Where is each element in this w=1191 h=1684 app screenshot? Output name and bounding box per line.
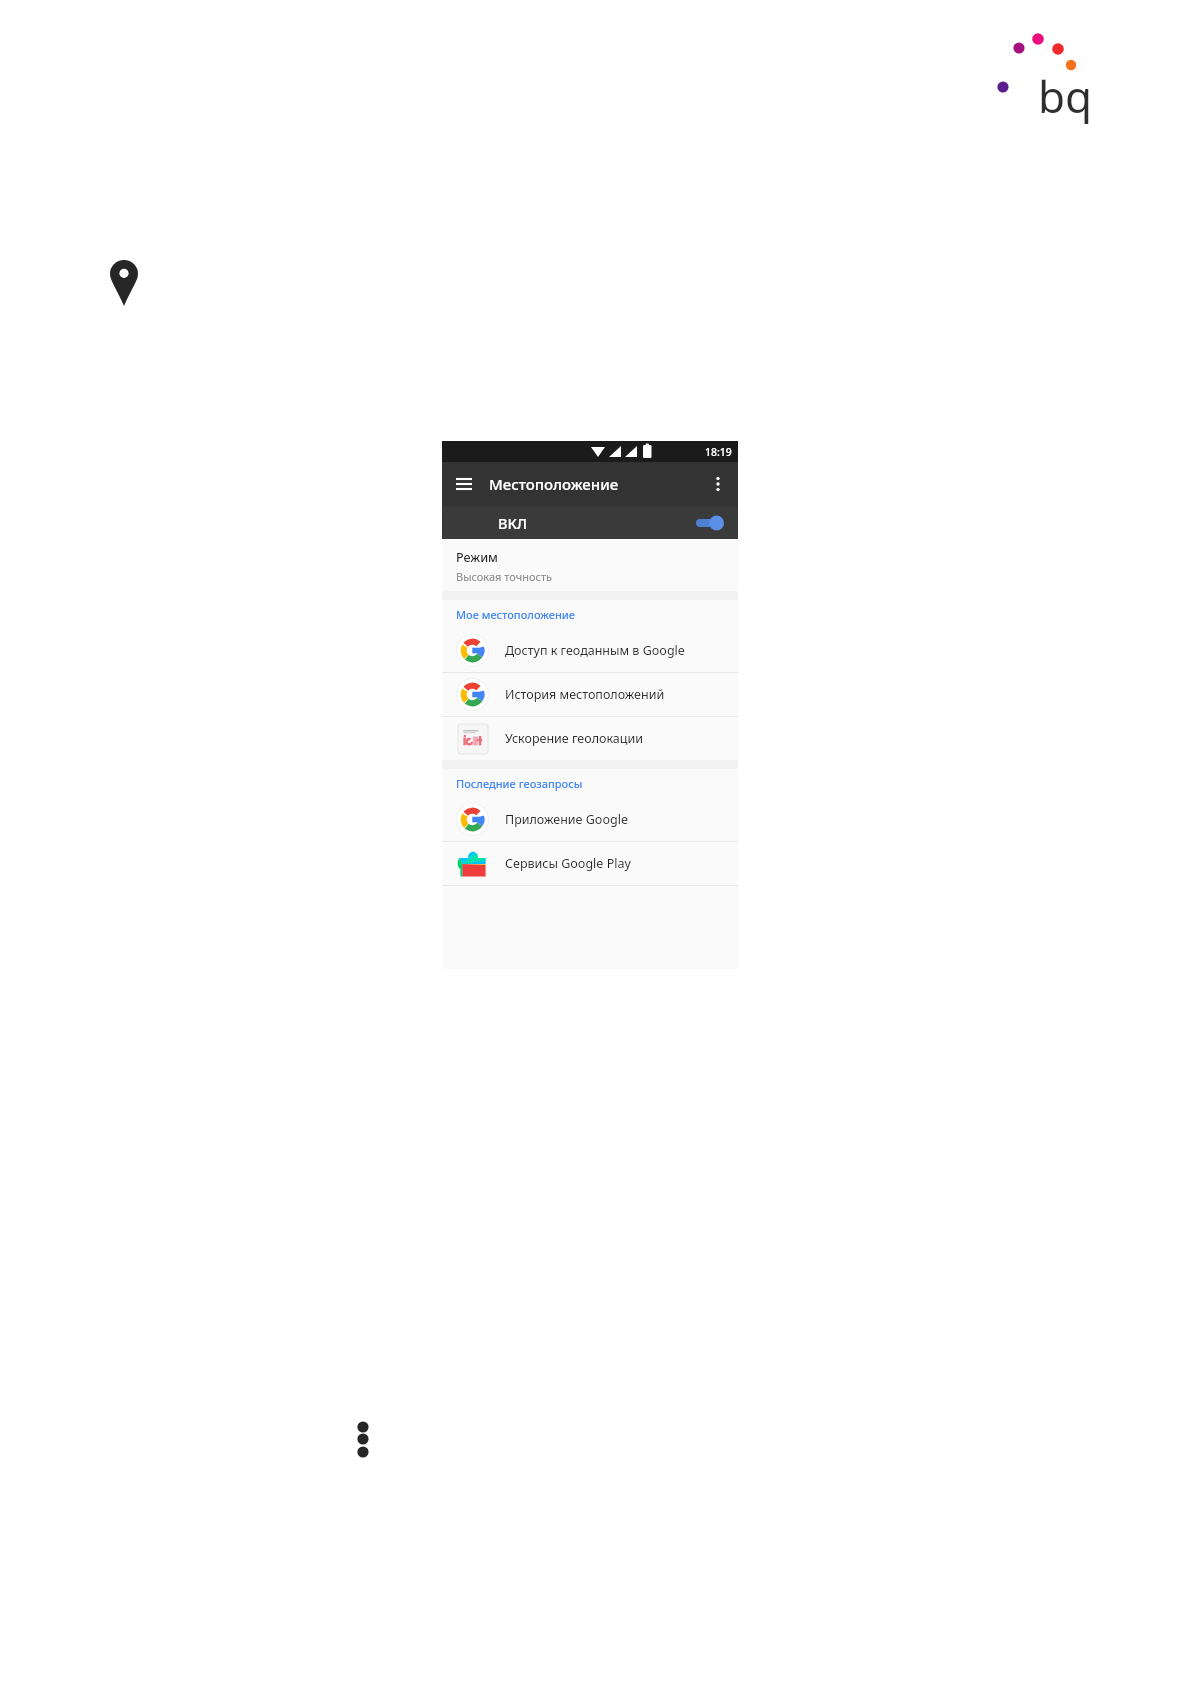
button[interactable]: Приложение Google (442, 798, 738, 841)
staticText: Ускорение геолокации (505, 730, 643, 747)
staticText: Доступ к геоданным в Google (505, 642, 685, 659)
staticText: Сервисы Google Play (505, 855, 631, 872)
staticText: Высокая точность (456, 569, 553, 584)
button[interactable]: ВКЛ (442, 506, 738, 539)
button[interactable]: Сервисы Google Play (442, 842, 738, 885)
button[interactable]: Ускорение геолокации (442, 717, 738, 760)
staticText: 18:19 (705, 445, 732, 459)
button[interactable]: Доступ к геоданным в Google (442, 629, 738, 672)
staticText: История местоположений (505, 686, 665, 703)
button[interactable]: Open navigation menu (442, 462, 486, 506)
button[interactable]: История местоположений (442, 673, 738, 716)
staticText: Режим (456, 549, 498, 566)
staticText: Мое местоположение (456, 607, 575, 622)
staticText: Местоположение (489, 474, 619, 494)
button[interactable]: More options (698, 464, 738, 504)
staticText: Последние геозапросы (456, 776, 583, 791)
staticText: bq (1038, 66, 1093, 126)
staticText: Приложение Google (505, 811, 628, 828)
button[interactable]: Режим (442, 539, 738, 591)
staticText: ВКЛ (498, 513, 528, 533)
